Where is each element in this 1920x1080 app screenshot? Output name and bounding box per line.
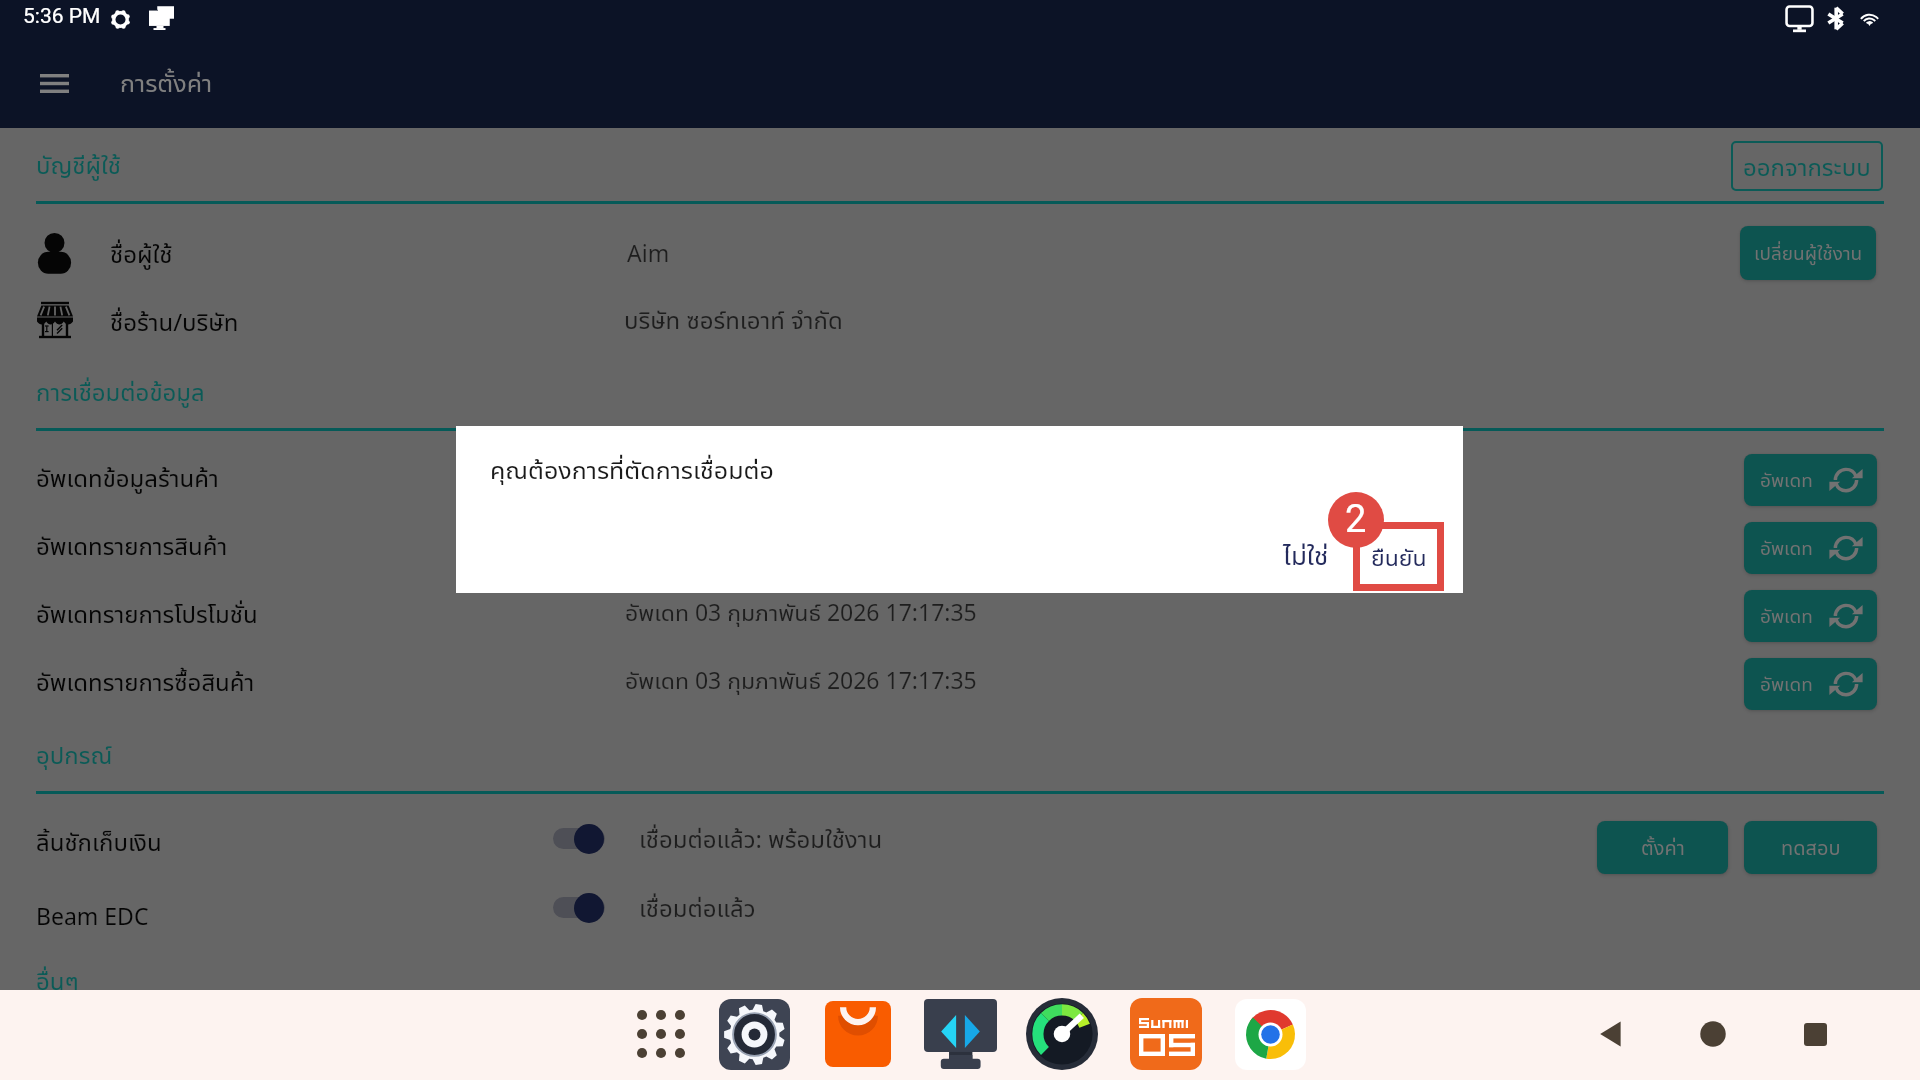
staticText: อัพเดท 03 กุมภาพันธ์ 2026 17:17:35 <box>625 664 977 695</box>
button[interactable]: Back <box>1579 1002 1643 1066</box>
staticText: อัพเดทรายการโปรโมชั่น <box>36 597 258 630</box>
staticText: การเชื่อมต่อข้อมูล <box>36 375 205 408</box>
button[interactable]: Chrome <box>1228 992 1312 1076</box>
button[interactable]: Display <box>918 992 1002 1076</box>
staticText: อัพเดทข้อมูลร้านค้า <box>36 461 219 494</box>
staticText: ทดสอบ <box>1781 834 1841 861</box>
staticText: อัพเดท <box>1760 671 1813 697</box>
staticText: Aim <box>627 237 670 268</box>
button[interactable]: Recent apps <box>1783 1002 1847 1066</box>
staticText: เชื่อมต่อแล้ว <box>639 891 756 924</box>
staticText: บริษัท ซอร์ทเอาท์ จำกัด <box>624 303 843 336</box>
staticText: ตั้งค่า <box>1641 834 1685 861</box>
button[interactable]: Sunmi OS <box>1124 992 1208 1076</box>
staticText: อัพเดท <box>1760 603 1813 629</box>
staticText: ออกจากระบบ <box>1743 150 1871 183</box>
staticText: อัพเดท <box>1760 535 1813 561</box>
button[interactable]: App store <box>816 992 900 1076</box>
button[interactable]: ทดสอบ <box>1744 821 1877 874</box>
staticText: อัพเดท <box>1760 467 1813 493</box>
staticText: อัพเดทรายการซื้อสินค้า <box>36 665 255 698</box>
staticText: ยืนยัน <box>1371 541 1427 572</box>
staticText: การตั้งค่า <box>120 65 213 99</box>
button[interactable]: Toggle Beam EDC <box>553 893 625 927</box>
button[interactable]: อัพเดท <box>1744 590 1877 642</box>
staticText: เชื่อมต่อแล้ว: พร้อมใช้งาน <box>639 822 883 855</box>
button[interactable]: เปลี่ยนผู้ใช้งาน <box>1740 226 1876 280</box>
button[interactable]: อัพเดท <box>1744 454 1877 506</box>
staticText: อัพเดท 03 กุมภาพันธ์ 2026 17:17:35 <box>625 596 977 627</box>
staticText: บัญชีผู้ใช้ <box>36 148 121 181</box>
staticText: อื่นๆ <box>36 964 79 997</box>
button[interactable]: Toggle ลิ้นชักเก็บเงิน <box>553 824 625 858</box>
button[interactable]: Home <box>1681 1002 1745 1066</box>
button[interactable]: All apps <box>619 992 703 1076</box>
staticText: ไม่ใช่ <box>1283 537 1329 572</box>
button[interactable]: ยืนยัน <box>1353 522 1444 590</box>
staticText: ชื่อผู้ใช้ <box>110 237 173 270</box>
button[interactable]: อัพเดท <box>1744 522 1877 574</box>
button[interactable]: ตั้งค่า <box>1597 821 1728 874</box>
button[interactable]: Settings <box>712 992 796 1076</box>
staticText: Beam EDC <box>36 900 149 931</box>
staticText: เปลี่ยนผู้ใช้งาน <box>1754 240 1863 266</box>
staticText: 5:36 PM <box>23 4 101 29</box>
button[interactable]: Open navigation menu <box>14 48 94 118</box>
staticText: 2 <box>1345 497 1367 542</box>
staticText: ลิ้นชักเก็บเงิน <box>36 825 162 858</box>
staticText: อัพเดทรายการสินค้า <box>36 529 228 562</box>
button[interactable]: ออกจากระบบ <box>1731 141 1883 191</box>
staticText: คุณต้องการที่ตัดการเชื่อมต่อ <box>490 452 774 486</box>
staticText: อุปกรณ์ <box>36 738 113 771</box>
button[interactable]: อัพเดท <box>1744 658 1877 710</box>
button[interactable]: ไม่ใช่ <box>1261 532 1351 576</box>
staticText: ชื่อร้าน/บริษัท <box>110 305 239 338</box>
button[interactable]: Speed test <box>1020 992 1104 1076</box>
